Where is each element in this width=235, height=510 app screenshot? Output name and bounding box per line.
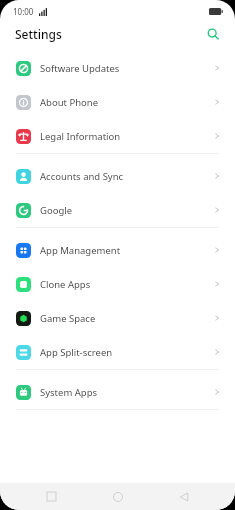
button[interactable]: Search settings (201, 22, 225, 46)
button[interactable]: Game Space (0, 301, 235, 335)
staticText: Legal Information (40, 130, 213, 143)
button[interactable]: Home (103, 483, 133, 510)
button[interactable]: Google (0, 193, 235, 227)
button[interactable]: System Apps (0, 375, 235, 409)
button[interactable]: Accounts and Sync (0, 159, 235, 193)
button[interactable]: Legal Information (0, 119, 235, 153)
staticText: Software Updates (40, 62, 213, 75)
staticText: System Apps (40, 386, 213, 399)
button[interactable]: Software Updates (0, 51, 235, 85)
staticText: Settings (15, 26, 62, 42)
button[interactable]: About Phone (0, 85, 235, 119)
button[interactable]: App Split-screen (0, 335, 235, 369)
staticText: About Phone (40, 96, 213, 109)
button[interactable]: Back (169, 483, 199, 510)
staticText: Accounts and Sync (40, 170, 213, 183)
staticText: Google (40, 204, 213, 217)
button[interactable]: App Management (0, 233, 235, 267)
staticText: App Split-screen (40, 346, 213, 359)
staticText: App Management (40, 244, 213, 257)
button[interactable]: Clone Apps (0, 267, 235, 301)
staticText: Clone Apps (40, 278, 213, 291)
staticText: 10:00 (13, 6, 34, 17)
button[interactable]: Recent apps (36, 483, 66, 510)
staticText: Game Space (40, 312, 213, 325)
